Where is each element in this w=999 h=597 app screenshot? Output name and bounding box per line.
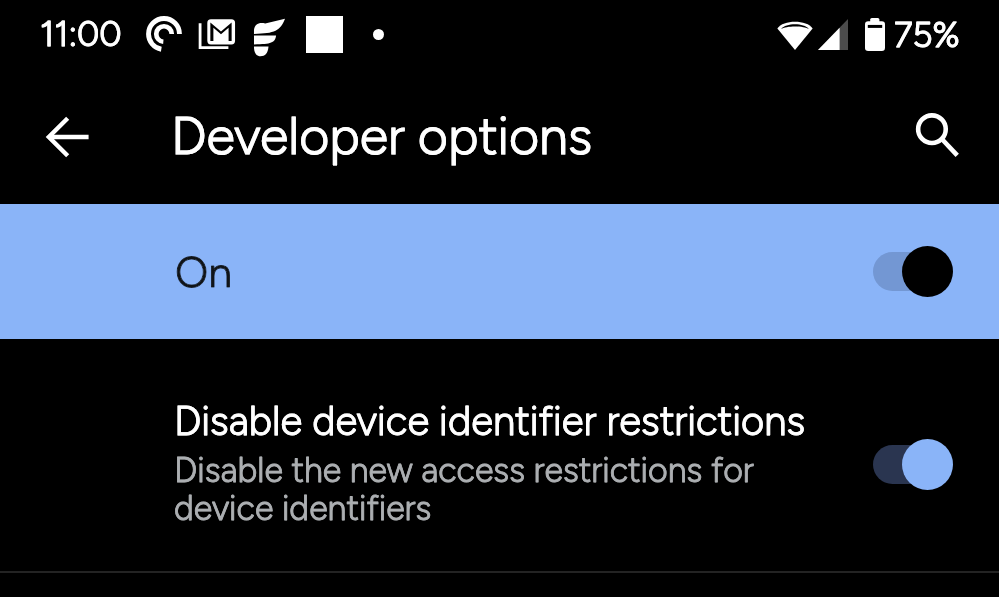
button[interactable]: On (0, 204, 999, 339)
staticText: 75% (894, 14, 960, 56)
staticText: Disable device identifier restrictions (174, 397, 806, 445)
staticText: 11:00 (40, 13, 122, 55)
staticText: Disable device identifier restrictions (174, 397, 806, 445)
staticText: 11:00 (40, 13, 122, 55)
button[interactable]: Toggle (873, 243, 953, 299)
staticText: Disable the new access restrictions for … (174, 450, 754, 529)
button[interactable]: Disable device identifier restrictions (0, 360, 999, 560)
button[interactable]: Back (24, 93, 112, 181)
staticText: On (175, 246, 233, 298)
staticText: On (175, 246, 233, 298)
button[interactable]: Toggle (873, 436, 953, 492)
staticText: Disable the new access restrictions for … (174, 450, 754, 529)
staticText: Developer options (171, 105, 593, 167)
staticText: 75% (894, 14, 960, 56)
button[interactable]: Search (893, 93, 981, 181)
staticText: Developer options (171, 105, 593, 167)
